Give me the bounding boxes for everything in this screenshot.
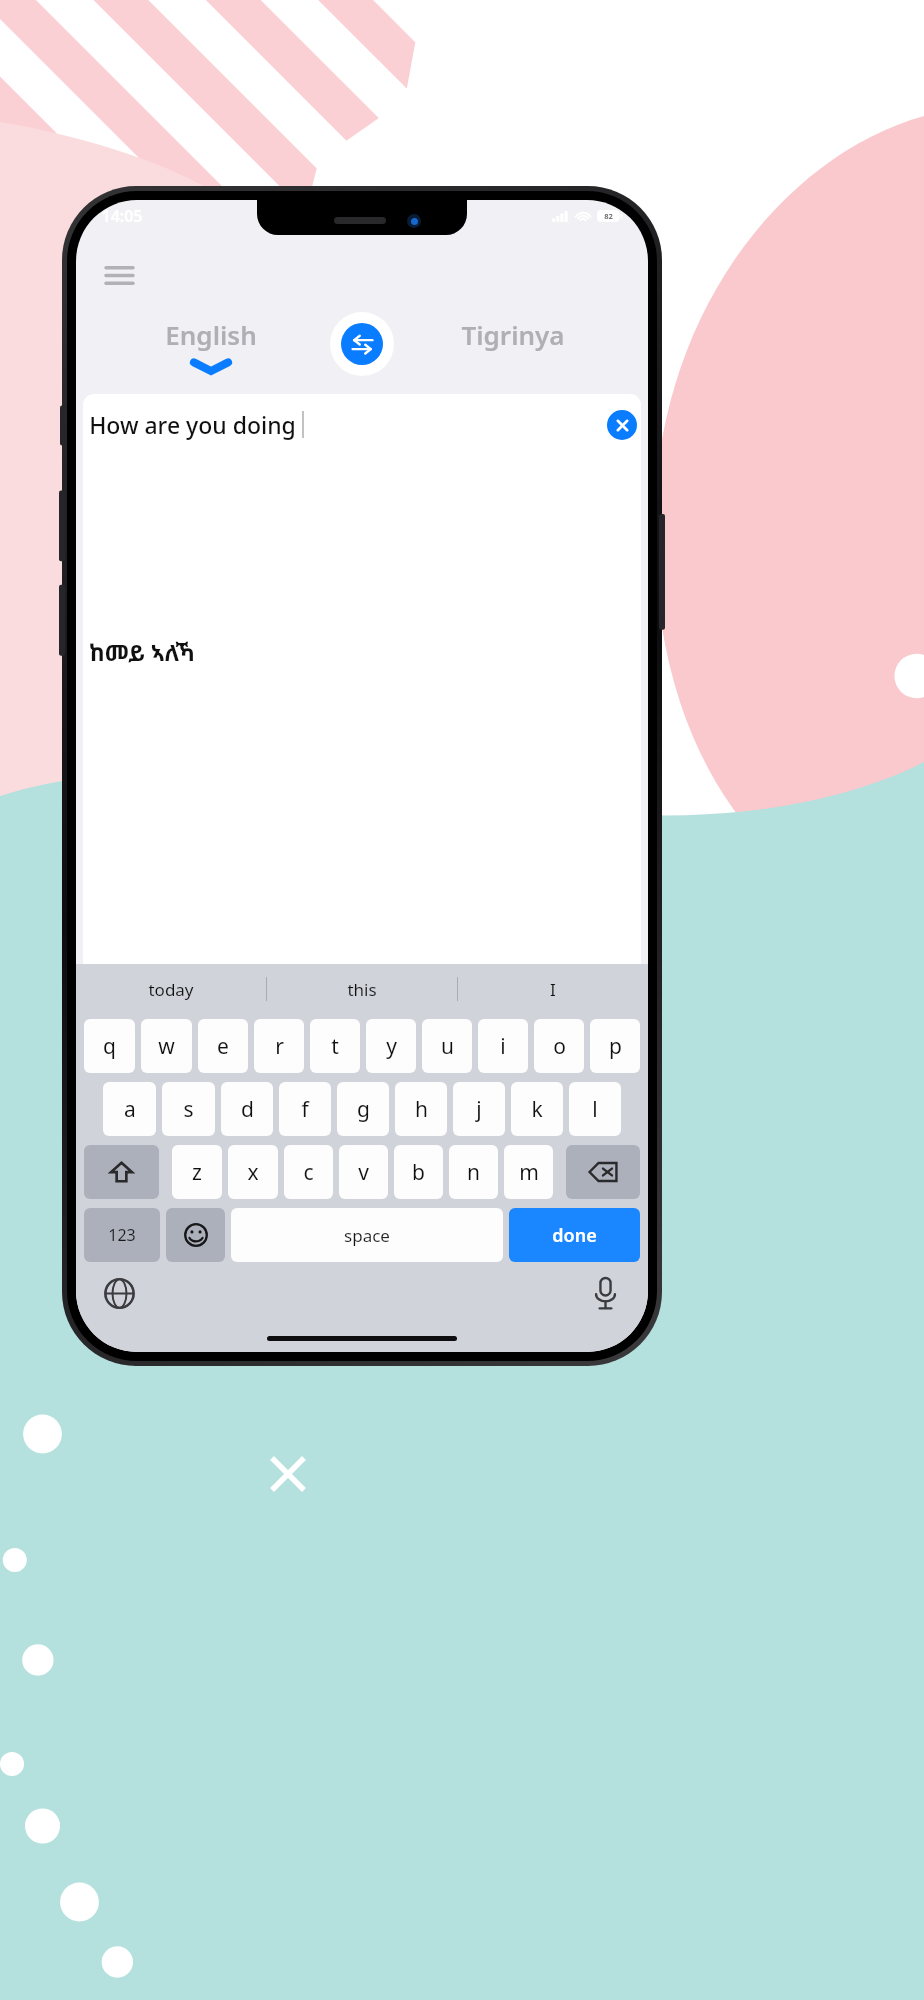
button[interactable]: g (337, 1082, 389, 1136)
staticText: n (467, 1158, 480, 1187)
button[interactable]: space (231, 1208, 503, 1262)
button[interactable]: p (590, 1019, 640, 1073)
staticText: this (347, 978, 377, 1001)
button[interactable]: n (449, 1145, 498, 1199)
button[interactable]: done (509, 1208, 640, 1262)
staticText: z (192, 1158, 202, 1187)
staticText: q (103, 1032, 116, 1061)
button[interactable]: this (267, 964, 457, 1014)
staticText: a (124, 1095, 136, 1124)
button[interactable]: i (478, 1019, 528, 1073)
staticText: c (303, 1158, 314, 1187)
button[interactable]: u (422, 1019, 472, 1073)
button[interactable]: c (284, 1145, 333, 1199)
staticText: 123 (108, 1224, 136, 1246)
staticText: r (275, 1032, 284, 1061)
button[interactable]: w (141, 1019, 192, 1073)
button[interactable]: f (279, 1082, 331, 1136)
button[interactable]: Voice input (584, 1272, 626, 1314)
staticText: 14:05 (101, 205, 143, 227)
button[interactable]: l (569, 1082, 621, 1136)
staticText: m (519, 1158, 539, 1187)
button[interactable]: Swap languages (330, 312, 394, 376)
button[interactable]: 123 (84, 1208, 160, 1262)
staticText: g (357, 1095, 370, 1124)
button[interactable]: j (453, 1082, 505, 1136)
button[interactable]: d (221, 1082, 273, 1136)
staticText: o (553, 1032, 566, 1061)
button[interactable]: Tigrinya (394, 306, 632, 382)
button[interactable]: m (504, 1145, 553, 1199)
staticText: e (217, 1032, 229, 1061)
button[interactable]: e (198, 1019, 248, 1073)
button[interactable]: z (172, 1145, 222, 1199)
staticText: v (358, 1158, 369, 1187)
staticText: Tigrinya (461, 317, 565, 352)
staticText: y (386, 1032, 397, 1061)
button[interactable]: k (511, 1082, 563, 1136)
staticText: b (412, 1158, 425, 1187)
staticText: ከመይ ኣለኻ (89, 636, 195, 667)
button[interactable]: Emoji (166, 1208, 225, 1262)
staticText: t (331, 1032, 339, 1061)
button[interactable]: q (84, 1019, 135, 1073)
staticText: I (550, 978, 556, 1001)
button[interactable]: s (162, 1082, 215, 1136)
button[interactable]: x (228, 1145, 278, 1199)
button[interactable]: Menu (96, 252, 142, 298)
button[interactable]: a (103, 1082, 156, 1136)
staticText: 82 (604, 211, 613, 221)
button[interactable]: b (394, 1145, 443, 1199)
button[interactable]: I (458, 964, 648, 1014)
staticText: p (609, 1032, 622, 1061)
staticText: h (415, 1095, 428, 1124)
button[interactable]: English (92, 306, 330, 382)
staticText: English (165, 317, 257, 352)
button[interactable]: o (534, 1019, 584, 1073)
button[interactable]: Clear text (607, 410, 637, 440)
staticText: l (592, 1095, 598, 1124)
button[interactable]: h (395, 1082, 447, 1136)
staticText: done (552, 1223, 597, 1248)
staticText: w (158, 1032, 175, 1061)
staticText: i (500, 1032, 506, 1061)
staticText: space (344, 1224, 390, 1247)
button[interactable]: v (339, 1145, 388, 1199)
staticText: f (301, 1095, 309, 1124)
button[interactable]: Close (262, 1448, 314, 1500)
staticText: j (476, 1095, 482, 1124)
button[interactable]: Shift (84, 1145, 159, 1199)
button[interactable]: y (366, 1019, 416, 1073)
staticText: How are you doing (89, 409, 296, 440)
button[interactable]: Change keyboard language (98, 1272, 140, 1314)
staticText: u (441, 1032, 454, 1061)
button[interactable]: Backspace (566, 1145, 640, 1199)
button[interactable]: r (254, 1019, 304, 1073)
staticText: x (247, 1158, 259, 1187)
staticText: s (183, 1095, 194, 1124)
staticText: k (531, 1095, 543, 1124)
button[interactable]: today (76, 964, 266, 1014)
staticText: d (241, 1095, 254, 1124)
staticText: today (148, 978, 194, 1001)
button[interactable]: t (310, 1019, 360, 1073)
